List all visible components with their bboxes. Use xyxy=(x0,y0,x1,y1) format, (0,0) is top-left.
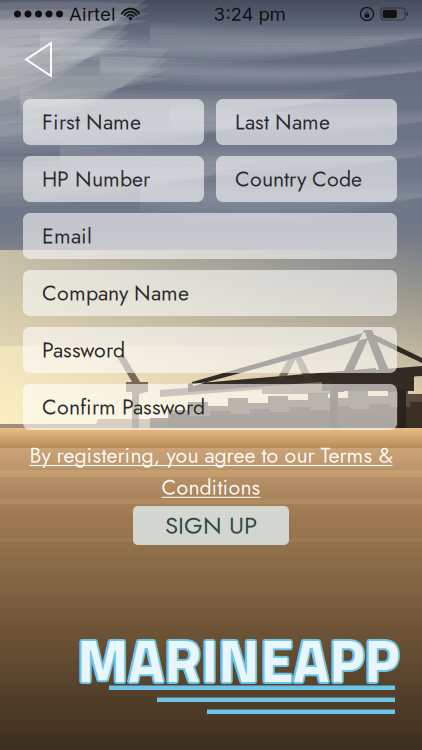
staticText: Airtel xyxy=(69,3,116,25)
button[interactable]: Company Name xyxy=(23,270,397,316)
staticText: Email xyxy=(42,221,92,251)
staticText: Conditions xyxy=(161,472,260,503)
button[interactable]: Last Name xyxy=(216,99,397,145)
staticText: MARINEAPP xyxy=(75,612,397,704)
button[interactable]: Email xyxy=(23,213,397,259)
staticText: Country Code xyxy=(235,164,362,194)
button[interactable]: First Name xyxy=(23,99,204,145)
staticText: SIGN UP xyxy=(165,508,257,543)
button[interactable]: SIGN UP xyxy=(133,506,289,545)
staticText: MARINEAPP xyxy=(79,612,401,704)
staticText: MARINEAPP xyxy=(75,616,397,707)
staticText: 3:24 pm xyxy=(213,3,285,25)
staticText: Company Name xyxy=(42,278,189,308)
staticText: HP Number xyxy=(42,164,150,194)
staticText: Password xyxy=(42,335,125,365)
staticText: Last Name xyxy=(235,107,330,137)
staticText: MARINEAPP xyxy=(75,614,397,705)
staticText: Confirm Password xyxy=(42,392,205,422)
staticText: MARINEAPP xyxy=(79,616,401,707)
button[interactable]: Country Code xyxy=(216,156,397,202)
staticText: First Name xyxy=(42,107,141,137)
staticText: MARINEAPP xyxy=(77,612,399,703)
staticText: MARINEAPP xyxy=(77,616,399,707)
staticText: MARINEAPP xyxy=(79,614,401,705)
button[interactable]: Password xyxy=(23,327,397,373)
staticText: By registering, you agree to our Terms & xyxy=(29,440,392,471)
button[interactable]: Back xyxy=(18,36,60,83)
staticText: MARINEAPP xyxy=(77,614,399,705)
button[interactable]: Confirm Password xyxy=(23,384,397,430)
button[interactable]: By registering, you agree to our Terms & xyxy=(0,440,422,503)
button[interactable]: HP Number xyxy=(23,156,204,202)
